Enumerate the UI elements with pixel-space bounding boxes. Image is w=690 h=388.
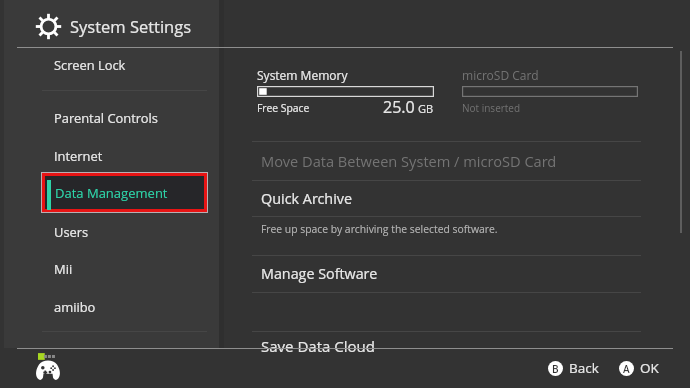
staticText: microSD Card <box>462 67 539 83</box>
button[interactable]: Manage Software <box>252 261 641 285</box>
staticText: Users <box>54 223 89 241</box>
staticText: Quick Archive <box>261 189 353 209</box>
staticText: Not inserted <box>462 101 521 115</box>
button[interactable]: Screen Lock <box>42 47 207 83</box>
staticText: Data Management <box>55 184 168 202</box>
other: Settings <box>35 13 62 40</box>
staticText: 25.0 <box>383 96 415 118</box>
button[interactable]: Mii <box>42 251 207 287</box>
staticText: Back <box>569 359 599 377</box>
button[interactable]: Move Data Between System / microSD Card <box>252 149 641 173</box>
staticText: Move Data Between System / microSD Card <box>261 151 557 171</box>
button[interactable]: amiibo <box>42 289 207 325</box>
button[interactable]: Data Management <box>41 172 208 213</box>
button[interactable]: B <box>548 357 599 379</box>
staticText: B <box>552 362 559 376</box>
staticText: amiibo <box>54 298 96 316</box>
staticText: System Settings <box>70 15 192 37</box>
staticText: Screen Lock <box>54 56 126 74</box>
staticText: A <box>623 362 630 376</box>
staticText: Free Space <box>257 101 310 115</box>
button[interactable]: Users <box>42 214 207 250</box>
button[interactable]: Free up space by archiving the selected … <box>252 217 641 241</box>
button[interactable]: A <box>619 357 659 379</box>
staticText: Manage Software <box>261 264 378 283</box>
staticText: Free up space by archiving the selected … <box>261 222 498 236</box>
button[interactable]: Internet <box>42 138 207 174</box>
staticText: GB <box>418 101 434 116</box>
other: Controllers <box>35 352 61 380</box>
button[interactable]: Save Data Cloud <box>252 334 641 358</box>
staticText: OK <box>640 359 659 377</box>
button[interactable]: Quick Archive <box>252 187 641 211</box>
staticText: Save Data Cloud <box>261 336 375 356</box>
staticText: Internet <box>54 147 103 165</box>
staticText: Parental Controls <box>54 109 158 127</box>
staticText: System Memory <box>257 67 348 83</box>
staticText: Mii <box>54 260 73 278</box>
button[interactable]: Parental Controls <box>42 100 207 136</box>
